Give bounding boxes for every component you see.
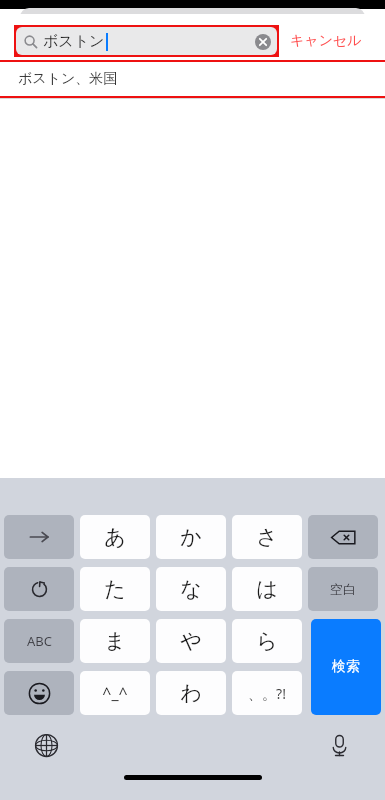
staticText: 検索	[332, 658, 360, 676]
button[interactable]: ら	[232, 619, 302, 663]
button[interactable]: な	[156, 567, 226, 611]
button[interactable]: た	[80, 567, 150, 611]
button[interactable]: Clear text	[255, 34, 271, 50]
staticText: ボストン	[43, 32, 105, 51]
button[interactable]: Dictation	[321, 727, 357, 763]
button[interactable]: キャンセル	[290, 32, 362, 50]
staticText: 、。?!	[248, 684, 286, 703]
staticText: は	[256, 576, 278, 602]
staticText: 空白	[330, 581, 356, 597]
button[interactable]: や	[156, 619, 226, 663]
staticText: ま	[104, 628, 126, 654]
staticText: ABC	[27, 632, 52, 650]
button[interactable]: 検索	[311, 619, 381, 715]
button[interactable]: さ	[232, 515, 302, 559]
staticText: ^_^	[102, 682, 128, 704]
button[interactable]: Next candidate	[4, 515, 74, 559]
staticText: さ	[256, 524, 278, 550]
staticText: キャンセル	[290, 32, 362, 50]
button[interactable]: わ	[156, 671, 226, 715]
staticText: あ	[104, 524, 126, 550]
staticText: た	[104, 576, 126, 602]
button[interactable]: Switch keyboard	[28, 727, 64, 763]
button[interactable]: Undo	[4, 567, 74, 611]
button[interactable]: Backspace	[308, 515, 378, 559]
staticText: か	[180, 524, 202, 550]
button[interactable]: 空白	[308, 567, 378, 611]
staticText: ら	[256, 628, 278, 654]
button[interactable]: ま	[80, 619, 150, 663]
staticText: や	[180, 628, 202, 654]
button[interactable]: ボストン	[16, 27, 277, 55]
button[interactable]: 、。?!	[232, 671, 302, 715]
button[interactable]: は	[232, 567, 302, 611]
button[interactable]: か	[156, 515, 226, 559]
button[interactable]: あ	[80, 515, 150, 559]
button[interactable]: Emoji	[4, 671, 74, 715]
staticText: な	[180, 576, 202, 602]
staticText: わ	[180, 680, 202, 706]
staticText: ボストン、米国	[18, 70, 118, 88]
button[interactable]: ABC	[4, 619, 74, 663]
button[interactable]: ^_^	[80, 671, 150, 715]
button[interactable]: ボストン、米国	[0, 62, 385, 96]
